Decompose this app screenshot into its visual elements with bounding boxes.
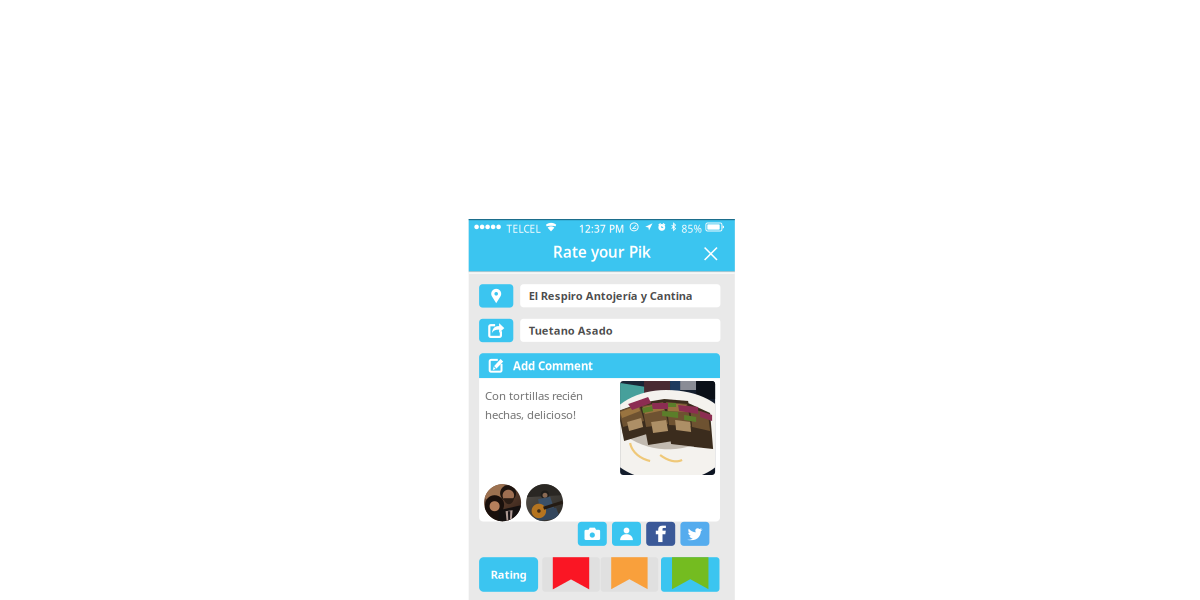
button[interactable]: Rating <box>479 557 538 592</box>
staticText: Rate your Pik <box>553 241 651 262</box>
staticText: Con tortillas recién <box>485 388 583 403</box>
button[interactable]: Share on Twitter <box>680 522 709 546</box>
staticText: Rating <box>491 567 527 582</box>
button[interactable]: Share on Facebook <box>646 522 675 546</box>
button[interactable]: Place <box>479 284 513 308</box>
button[interactable]: Dish <box>479 319 513 342</box>
button[interactable]: Close <box>697 240 725 268</box>
button[interactable]: Tag friends <box>612 522 641 546</box>
staticText: hechas, delicioso! <box>485 407 576 422</box>
button[interactable]: Tuetano Asado <box>520 319 720 342</box>
button[interactable]: Great rating <box>661 557 719 592</box>
staticText: 12:37 PM <box>579 222 624 236</box>
button[interactable]: El Respiro Antojería y Cantina <box>520 284 720 307</box>
staticText: 85% <box>681 222 701 236</box>
button[interactable]: Camera <box>578 522 607 546</box>
staticText: Tuetano Asado <box>529 323 613 338</box>
staticText: Add Comment <box>513 358 593 373</box>
staticText: TELCEL <box>506 222 540 236</box>
staticText: El Respiro Antojería y Cantina <box>529 288 693 303</box>
button[interactable]: Poor rating <box>542 557 600 592</box>
button[interactable]: Add Comment <box>479 353 720 378</box>
button[interactable]: Average rating <box>601 557 658 592</box>
